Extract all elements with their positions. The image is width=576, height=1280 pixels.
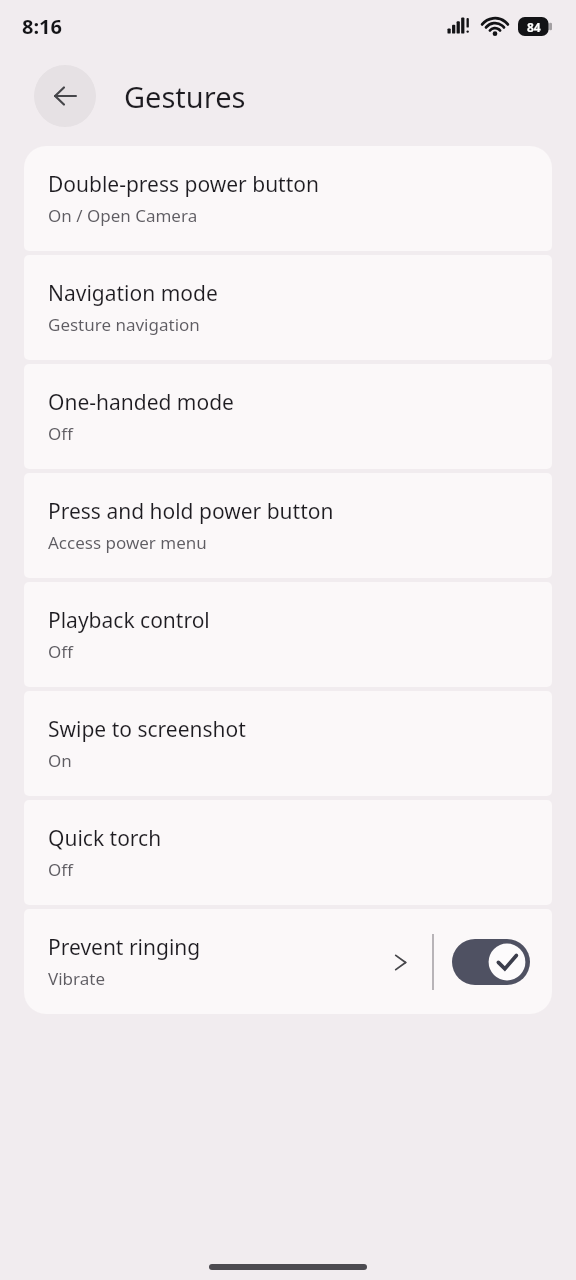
staticText: Off xyxy=(48,640,73,663)
staticText: On / Open Camera xyxy=(48,204,198,227)
staticText: Gesture navigation xyxy=(48,313,200,336)
button[interactable]: One-handed mode xyxy=(24,364,552,469)
staticText: Vibrate xyxy=(48,967,105,990)
button[interactable]: Playback control xyxy=(24,582,552,687)
staticText: One-handed mode xyxy=(48,388,234,417)
button[interactable]: Prevent ringing xyxy=(24,909,378,1014)
staticText: Swipe to screenshot xyxy=(48,715,246,744)
button[interactable]: Press and hold power button xyxy=(24,473,552,578)
staticText: Quick torch xyxy=(48,824,162,853)
staticText: 84 xyxy=(527,19,541,35)
staticText: Gestures xyxy=(124,77,246,116)
staticText: On xyxy=(48,749,72,772)
button[interactable]: Toggle prevent ringing xyxy=(452,939,530,985)
button[interactable]: Back xyxy=(34,65,96,127)
staticText: Press and hold power button xyxy=(48,497,334,526)
button[interactable]: Navigation mode xyxy=(24,255,552,360)
button[interactable]: Open Prevent ringing settings xyxy=(378,940,422,984)
staticText: 8:16 xyxy=(22,13,62,40)
staticText: Off xyxy=(48,422,73,445)
button[interactable]: Double-press power button xyxy=(24,146,552,251)
button[interactable]: Swipe to screenshot xyxy=(24,691,552,796)
staticText: Prevent ringing xyxy=(48,933,201,962)
staticText: Access power menu xyxy=(48,531,207,554)
staticText: Navigation mode xyxy=(48,279,218,308)
staticText: Double-press power button xyxy=(48,170,319,199)
button[interactable]: Quick torch xyxy=(24,800,552,905)
staticText: Off xyxy=(48,858,73,881)
staticText: Playback control xyxy=(48,606,210,635)
